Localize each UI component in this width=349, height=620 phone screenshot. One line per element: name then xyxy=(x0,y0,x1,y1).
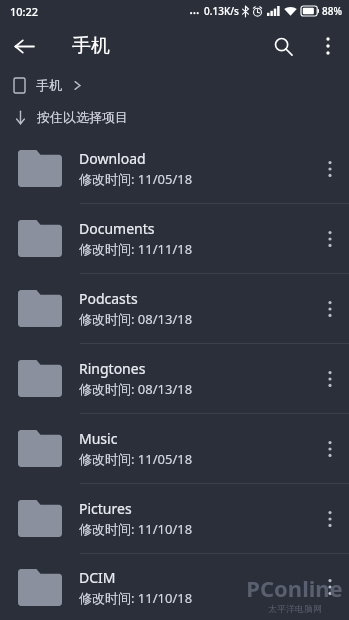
button[interactable]: Back xyxy=(0,22,48,70)
button[interactable]: More options xyxy=(311,134,349,203)
staticText: 手机 xyxy=(72,34,110,58)
button[interactable]: Music xyxy=(0,414,349,483)
staticText: 手机 xyxy=(36,77,62,93)
button[interactable]: More options xyxy=(311,204,349,273)
staticText: DCIM xyxy=(79,568,116,587)
button[interactable]: More options xyxy=(307,22,349,70)
staticText: 修改时间: 11/10/18 xyxy=(79,589,193,607)
staticText: Download xyxy=(79,149,146,168)
button[interactable]: 手机 xyxy=(14,77,62,93)
button[interactable]: Search xyxy=(259,22,307,70)
staticText: 修改时间: 11/10/18 xyxy=(79,520,193,538)
button[interactable]: More options xyxy=(311,274,349,343)
staticText: PConline xyxy=(246,573,343,603)
staticText: 修改时间: 11/11/18 xyxy=(79,240,193,258)
staticText: 修改时间: 11/05/18 xyxy=(79,450,193,468)
staticText: Podcasts xyxy=(79,289,138,308)
staticText: 太平洋电脑网 xyxy=(268,603,322,614)
staticText: 按住以选择项目 xyxy=(37,109,128,125)
button[interactable]: Documents xyxy=(0,204,349,273)
button[interactable]: More options xyxy=(311,484,349,553)
button[interactable]: DCIM xyxy=(0,554,349,620)
staticText: Documents xyxy=(79,219,155,238)
staticText: Ringtones xyxy=(79,359,146,378)
button[interactable]: More options xyxy=(311,414,349,483)
staticText: 88% xyxy=(322,4,342,18)
staticText: Pictures xyxy=(79,499,132,518)
button[interactable]: More options xyxy=(311,344,349,413)
button[interactable]: Ringtones xyxy=(0,344,349,413)
staticText: 修改时间: 11/05/18 xyxy=(79,170,193,188)
staticText: Music xyxy=(79,429,118,448)
button[interactable]: More options xyxy=(311,554,349,620)
staticText: 10:22 xyxy=(10,4,39,19)
button[interactable]: Download xyxy=(0,134,349,203)
button[interactable]: Podcasts xyxy=(0,274,349,343)
staticText: 修改时间: 08/13/18 xyxy=(79,310,193,328)
staticText: 修改时间: 08/13/18 xyxy=(79,380,193,398)
staticText: 0.13K/s xyxy=(204,4,239,18)
button[interactable]: Pictures xyxy=(0,484,349,553)
